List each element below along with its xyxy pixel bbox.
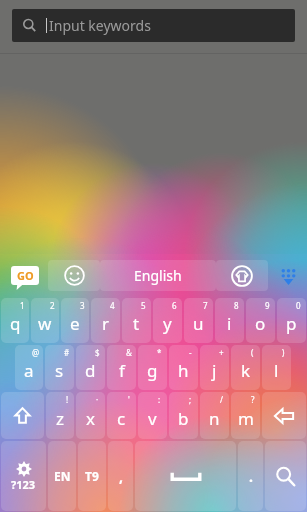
staticText: English — [134, 266, 182, 285]
button[interactable]: Input keywords — [12, 9, 295, 42]
staticText: e — [70, 312, 80, 335]
staticText: . — [249, 467, 253, 486]
staticText: z — [56, 407, 64, 430]
staticText: GO — [17, 268, 34, 283]
staticText: ; — [189, 394, 192, 405]
button[interactable]: EN — [48, 441, 76, 511]
staticText: · — [96, 394, 99, 405]
button[interactable]: m — [231, 392, 260, 439]
staticText: ?123 — [11, 477, 36, 492]
button[interactable]: i — [215, 298, 244, 343]
staticText: - — [189, 347, 192, 358]
staticText: b — [178, 407, 189, 430]
button[interactable]: p — [277, 298, 306, 343]
button[interactable]: r — [91, 298, 120, 343]
staticText: o — [255, 312, 266, 335]
button[interactable]: English — [100, 260, 216, 291]
staticText: i — [227, 312, 232, 335]
button[interactable]: Emoji — [48, 260, 100, 291]
staticText: 9 — [265, 300, 270, 311]
staticText: + — [219, 347, 224, 358]
button[interactable]: b — [169, 392, 198, 439]
staticText: 2 — [50, 300, 55, 311]
staticText: h — [178, 359, 189, 382]
staticText: EN — [54, 468, 71, 484]
button[interactable]: q — [1, 298, 29, 343]
button[interactable]: y — [153, 298, 182, 343]
staticText: r — [102, 312, 110, 335]
staticText: c — [117, 407, 126, 430]
button[interactable]: Backspace — [262, 392, 306, 439]
button[interactable]: , — [108, 441, 133, 511]
staticText: m — [238, 407, 254, 430]
staticText: , — [119, 467, 123, 486]
staticText: T9 — [85, 468, 99, 484]
staticText: 1 — [20, 300, 25, 311]
staticText: x — [86, 407, 95, 430]
staticText: n — [209, 407, 220, 430]
staticText: u — [193, 312, 204, 335]
button[interactable]: o — [246, 298, 275, 343]
button[interactable]: f — [107, 345, 136, 390]
staticText: g — [147, 359, 158, 382]
staticText: s — [55, 359, 64, 382]
staticText: 8 — [234, 300, 239, 311]
button[interactable]: T9 — [78, 441, 106, 511]
staticText: 0 — [296, 300, 301, 311]
staticText: v — [148, 407, 157, 430]
button[interactable]: d — [76, 345, 105, 390]
staticText: ) — [282, 347, 285, 358]
button[interactable]: Search — [265, 441, 306, 511]
button[interactable]: l — [262, 345, 291, 390]
button[interactable]: GO Keyboard menu — [11, 266, 39, 285]
staticText: 7 — [203, 300, 208, 311]
staticText: f — [119, 359, 125, 382]
button[interactable]: x — [76, 392, 105, 439]
staticText: # — [64, 347, 70, 358]
button[interactable]: Theme — [216, 260, 268, 291]
staticText: $ — [95, 347, 100, 358]
button[interactable]: t — [122, 298, 151, 343]
button[interactable]: w — [31, 298, 59, 343]
staticText: a — [24, 359, 34, 382]
staticText: y — [163, 312, 172, 335]
staticText: Input keywords — [49, 16, 151, 35]
staticText: 5 — [141, 300, 146, 311]
staticText: ' — [128, 394, 130, 405]
button[interactable]: k — [231, 345, 260, 390]
button[interactable]: Space — [135, 441, 236, 511]
button[interactable]: z — [46, 392, 74, 439]
staticText: t — [133, 312, 140, 335]
button[interactable]: c — [107, 392, 136, 439]
staticText: q — [10, 312, 21, 335]
staticText: 3 — [80, 300, 85, 311]
button[interactable]: Hide keyboard — [273, 261, 303, 291]
staticText: @ — [32, 347, 40, 358]
button[interactable]: a — [15, 345, 43, 390]
staticText: j — [212, 359, 217, 382]
staticText: * — [157, 347, 162, 358]
staticText: ! — [66, 394, 69, 405]
staticText: d — [85, 359, 96, 382]
staticText: p — [286, 312, 297, 335]
staticText: ( — [251, 347, 254, 358]
button[interactable]: n — [200, 392, 229, 439]
staticText: 4 — [110, 300, 115, 311]
button[interactable]: . — [238, 441, 263, 511]
button[interactable]: j — [200, 345, 229, 390]
button[interactable]: g — [138, 345, 167, 390]
staticText: 6 — [172, 300, 177, 311]
staticText: w — [38, 312, 52, 335]
button[interactable]: v — [138, 392, 167, 439]
button[interactable]: u — [184, 298, 213, 343]
staticText: k — [241, 359, 251, 382]
staticText: & — [126, 347, 132, 358]
button[interactable]: Shift — [1, 392, 44, 439]
button[interactable]: e — [61, 298, 89, 343]
button[interactable]: Symbols and settings — [1, 441, 46, 511]
staticText: : — [158, 394, 161, 405]
staticText: / — [220, 394, 223, 405]
button[interactable]: s — [45, 345, 74, 390]
staticText: ? — [251, 394, 255, 405]
button[interactable]: h — [169, 345, 198, 390]
